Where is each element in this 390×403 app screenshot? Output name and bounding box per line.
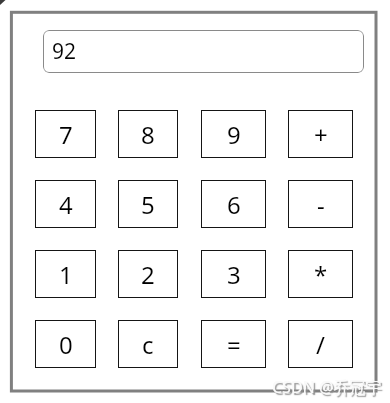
staticText: = xyxy=(227,328,241,361)
staticText: 7 xyxy=(59,118,73,151)
button[interactable]: = xyxy=(201,320,266,368)
staticText: 8 xyxy=(141,118,155,151)
button[interactable]: 9 xyxy=(201,110,266,158)
staticText: / xyxy=(316,328,325,361)
staticText: 0 xyxy=(59,328,73,361)
staticText: * xyxy=(314,258,328,291)
button[interactable]: 2 xyxy=(118,250,178,298)
staticText: 5 xyxy=(141,188,155,221)
button[interactable]: 4 xyxy=(35,180,96,228)
button[interactable]: + xyxy=(288,110,353,158)
staticText: 92 xyxy=(52,37,77,66)
staticText: 6 xyxy=(227,188,241,221)
button[interactable]: c xyxy=(118,320,178,368)
staticText: 2 xyxy=(141,258,155,291)
staticText: 4 xyxy=(59,188,73,221)
staticText: 9 xyxy=(227,118,241,151)
button[interactable]: * xyxy=(288,250,353,298)
button[interactable]: 8 xyxy=(118,110,178,158)
button[interactable]: 0 xyxy=(35,320,96,368)
button[interactable]: 5 xyxy=(118,180,178,228)
button[interactable]: 92 xyxy=(43,30,364,73)
staticText: 3 xyxy=(227,258,241,291)
button[interactable]: 6 xyxy=(201,180,266,228)
button[interactable]: / xyxy=(288,320,353,368)
staticText: 1 xyxy=(59,258,73,291)
staticText: - xyxy=(317,188,325,221)
button[interactable]: - xyxy=(288,180,353,228)
staticText: c xyxy=(142,328,154,361)
button[interactable]: 1 xyxy=(35,250,96,298)
staticText: + xyxy=(314,118,328,151)
button[interactable]: 7 xyxy=(35,110,96,158)
staticText: CSDN @乔冠宇 xyxy=(272,376,382,398)
button[interactable]: 3 xyxy=(201,250,266,298)
